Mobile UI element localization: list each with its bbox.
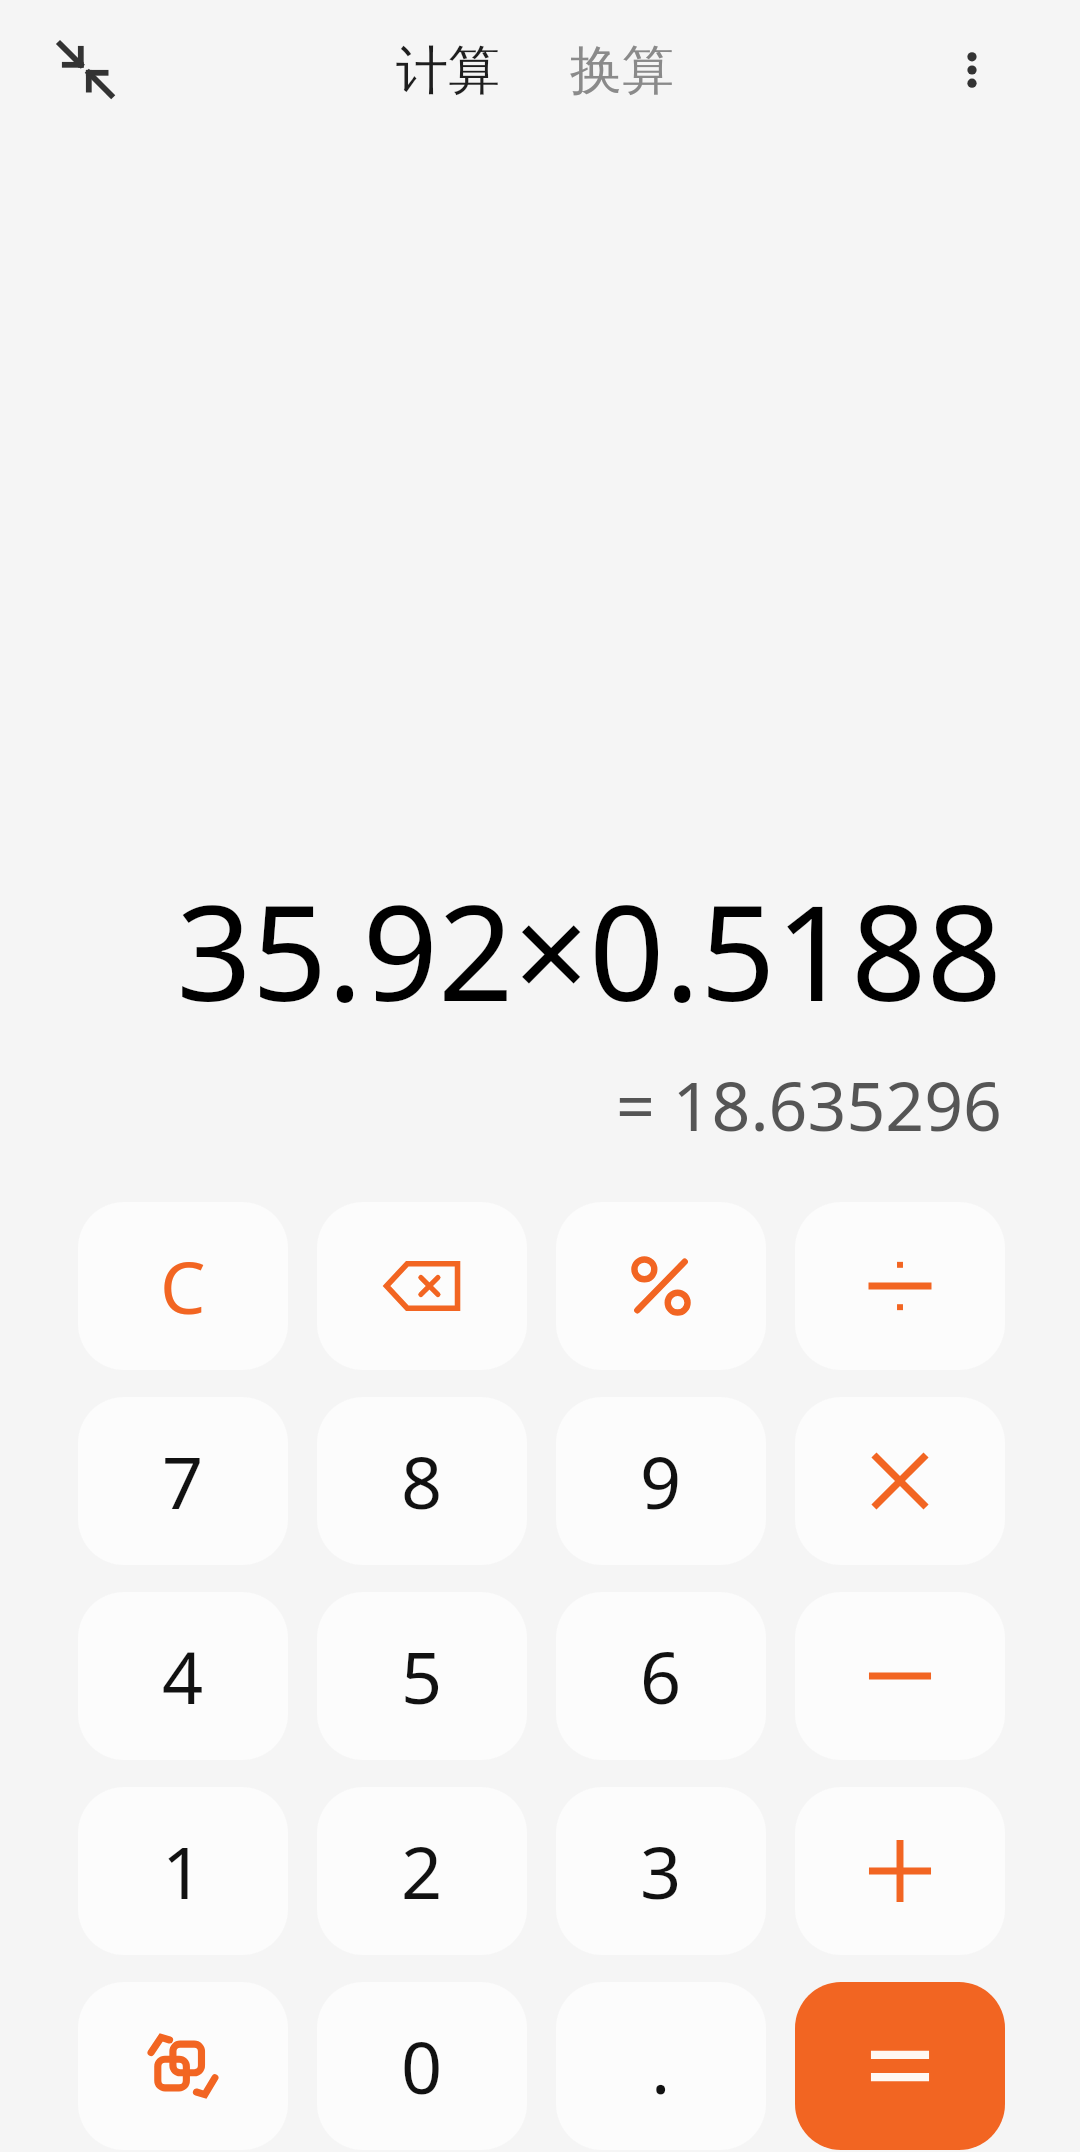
- button[interactable]: Equals: [795, 1982, 1005, 2150]
- staticText: 0: [401, 2017, 443, 2115]
- staticText: 2: [401, 1822, 443, 1920]
- button[interactable]: Plus: [795, 1787, 1005, 1955]
- button[interactable]: 计算: [396, 38, 500, 104]
- button[interactable]: Convert units: [78, 1982, 288, 2150]
- staticText: 3: [640, 1822, 682, 1920]
- staticText: = 18.635296: [616, 1058, 1002, 1151]
- staticText: 1: [162, 1822, 204, 1920]
- button[interactable]: 3: [556, 1787, 766, 1955]
- button[interactable]: Collapse: [44, 28, 124, 108]
- staticText: C: [160, 1237, 206, 1335]
- button[interactable]: C: [78, 1202, 288, 1370]
- button[interactable]: 9: [556, 1397, 766, 1565]
- button[interactable]: 5: [317, 1592, 527, 1760]
- button[interactable]: Divide: [795, 1202, 1005, 1370]
- button[interactable]: .: [556, 1982, 766, 2150]
- button[interactable]: 换算: [570, 38, 674, 104]
- button[interactable]: 6: [556, 1592, 766, 1760]
- button[interactable]: 8: [317, 1397, 527, 1565]
- button[interactable]: 4: [78, 1592, 288, 1760]
- staticText: 4: [162, 1627, 204, 1725]
- button[interactable]: More options: [930, 28, 1014, 112]
- staticText: 7: [162, 1432, 204, 1530]
- button[interactable]: Backspace: [317, 1202, 527, 1370]
- staticText: 9: [640, 1432, 682, 1530]
- staticText: 6: [640, 1627, 682, 1725]
- staticText: 8: [401, 1432, 443, 1530]
- button[interactable]: 0: [317, 1982, 527, 2150]
- staticText: 换算: [570, 38, 674, 104]
- staticText: 5: [401, 1627, 443, 1725]
- button[interactable]: Minus: [795, 1592, 1005, 1760]
- button[interactable]: 2: [317, 1787, 527, 1955]
- button[interactable]: 1: [78, 1787, 288, 1955]
- staticText: .: [651, 2017, 671, 2115]
- button[interactable]: Percent: [556, 1202, 766, 1370]
- staticText: 35.92×0.5188: [176, 860, 1002, 1040]
- button[interactable]: 7: [78, 1397, 288, 1565]
- button[interactable]: Multiply: [795, 1397, 1005, 1565]
- staticText: 计算: [396, 38, 500, 104]
